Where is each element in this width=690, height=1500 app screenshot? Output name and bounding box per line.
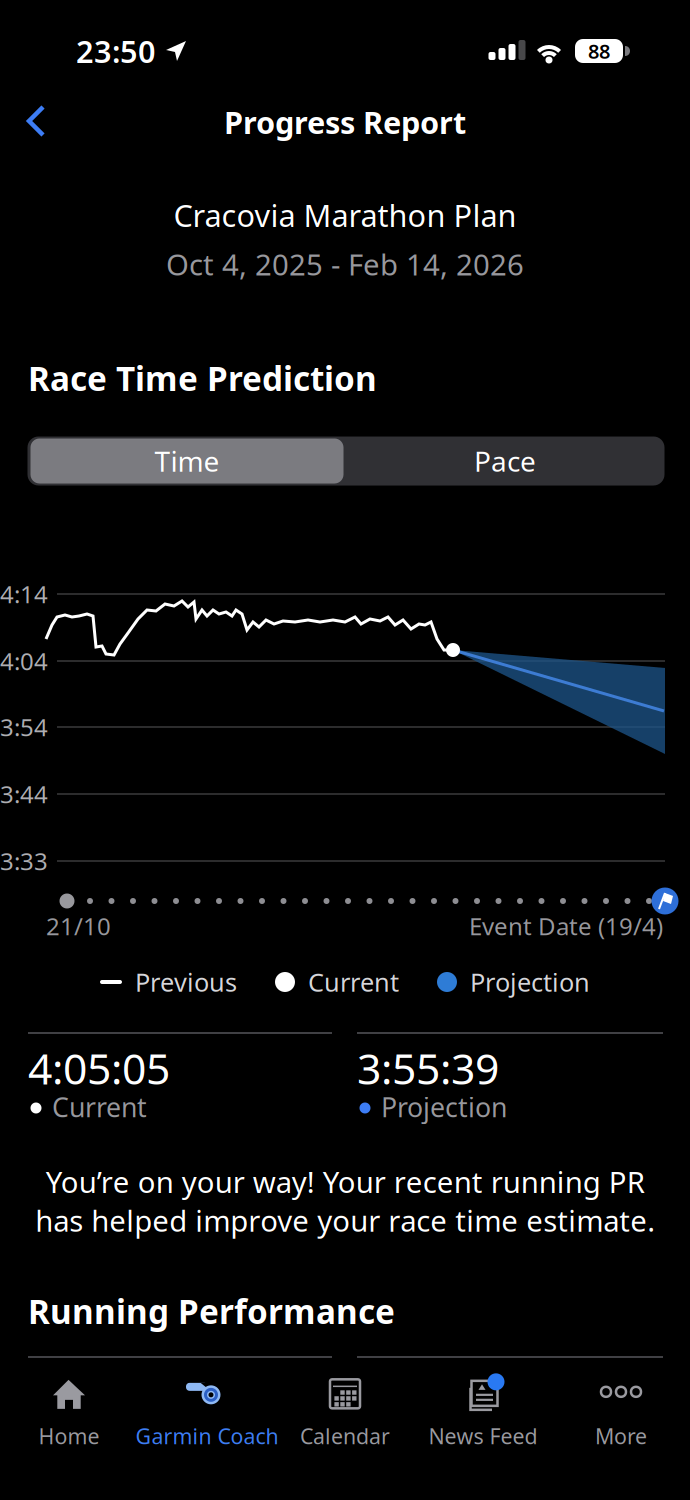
button[interactable]: Time: [28, 436, 345, 485]
staticText: 3:54: [0, 711, 48, 743]
staticText: Race Time Prediction: [28, 356, 377, 400]
button[interactable]: More: [545, 1370, 690, 1454]
staticText: Time: [154, 442, 219, 480]
staticText: Projection: [470, 965, 590, 999]
button[interactable]: News Feed: [407, 1370, 559, 1454]
staticText: Projection: [381, 1089, 507, 1125]
staticText: 3:44: [0, 778, 48, 810]
staticText: 23:50: [76, 31, 156, 71]
button[interactable]: Calendar: [269, 1370, 421, 1454]
staticText: 88: [588, 38, 610, 64]
staticText: You’re on your way! Your recent running …: [35, 1162, 655, 1240]
staticText: Current: [308, 965, 399, 999]
button[interactable]: Back: [14, 99, 58, 143]
staticText: Home: [38, 1422, 99, 1450]
button[interactable]: Garmin Coach: [131, 1370, 283, 1454]
staticText: Progress Report: [224, 102, 466, 142]
staticText: More: [595, 1422, 647, 1450]
staticText: 4:04: [0, 645, 48, 677]
staticText: News Feed: [428, 1422, 537, 1450]
staticText: 4:14: [0, 578, 48, 610]
staticText: 21/10: [46, 910, 111, 942]
staticText: 3:55:39: [357, 1040, 499, 1096]
staticText: Pace: [474, 442, 536, 480]
staticText: Previous: [135, 965, 237, 999]
staticText: Running Performance: [28, 1289, 395, 1333]
staticText: Calendar: [300, 1422, 390, 1450]
staticText: Event Date (19/4): [469, 910, 663, 942]
staticText: Current: [52, 1089, 147, 1125]
button[interactable]: Pace: [346, 436, 663, 485]
staticText: Cracovia Marathon Plan: [173, 195, 516, 235]
staticText: 3:33: [0, 845, 48, 877]
staticText: Garmin Coach: [135, 1422, 278, 1450]
staticText: Oct 4, 2025 - Feb 14, 2026: [166, 244, 524, 283]
staticText: 4:05:05: [28, 1040, 170, 1096]
button[interactable]: Home: [0, 1370, 145, 1454]
